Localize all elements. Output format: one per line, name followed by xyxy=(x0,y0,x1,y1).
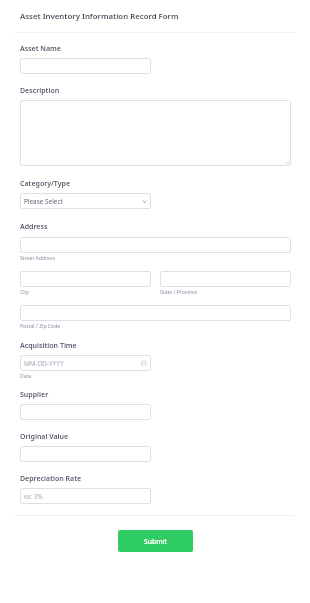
staticText: City xyxy=(20,289,29,296)
staticText: Asset Name xyxy=(20,44,61,54)
button[interactable]: Submit xyxy=(118,530,193,552)
staticText: Date xyxy=(20,373,32,380)
staticText: Please Select xyxy=(24,197,63,206)
staticText: Postal / Zip Code xyxy=(20,323,61,330)
staticText: Description xyxy=(20,86,60,96)
button[interactable] xyxy=(20,58,151,74)
staticText: Supplier xyxy=(20,390,49,400)
button[interactable] xyxy=(20,237,291,253)
button[interactable]: ex: 3% xyxy=(20,488,151,504)
staticText: ex: 3% xyxy=(24,492,43,500)
staticText: Street Address xyxy=(20,255,55,262)
staticText: Submit xyxy=(144,537,168,546)
button[interactable]: Please Select xyxy=(20,193,151,209)
staticText: Asset Inventory Information Record Form xyxy=(20,11,179,22)
button[interactable] xyxy=(20,271,151,287)
button[interactable]: MM-DD-YYYY xyxy=(20,355,151,371)
staticText: MM-DD-YYYY xyxy=(24,359,64,368)
button[interactable] xyxy=(20,100,291,166)
button[interactable] xyxy=(20,446,151,462)
staticText: State / Province xyxy=(160,289,198,296)
button[interactable] xyxy=(20,305,291,321)
staticText: Address xyxy=(20,222,48,232)
button[interactable] xyxy=(160,271,291,287)
staticText: Original Value xyxy=(20,432,69,442)
staticText: Depreciation Rate xyxy=(20,474,82,484)
button[interactable] xyxy=(20,404,151,420)
staticText: Category/Type xyxy=(20,179,71,189)
other: Pick date xyxy=(141,360,147,366)
staticText: Acquisition Time xyxy=(20,341,77,351)
